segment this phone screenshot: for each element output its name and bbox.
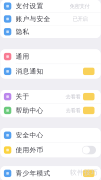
- staticText: 青少年模式: [15, 169, 50, 177]
- button[interactable]: 账户与安全: [0, 13, 100, 25]
- staticText: 使用外币: [15, 146, 43, 154]
- staticText: 关于: [15, 93, 29, 101]
- staticText: 通用: [15, 52, 29, 61]
- staticText: 消息通知: [15, 67, 43, 75]
- staticText: 软件技巧: [70, 168, 98, 176]
- button[interactable]: 使用外币: [0, 143, 100, 157]
- staticText: 去看看: [65, 93, 80, 100]
- staticText: 安全中心: [15, 131, 43, 139]
- button[interactable]: 通用: [0, 49, 100, 64]
- button[interactable]: 消息通知: [0, 64, 100, 78]
- button[interactable]: 支付设置: [0, 0, 100, 12]
- staticText: 隐私: [15, 28, 29, 36]
- staticText: 已开启: [72, 16, 87, 22]
- staticText: 帮助中心: [15, 106, 43, 115]
- button[interactable]: 关于: [0, 90, 100, 103]
- button[interactable]: 青少年模式: [0, 166, 100, 180]
- staticText: 账户与安全: [15, 15, 50, 23]
- staticText: 支付设置: [15, 2, 43, 10]
- button[interactable]: 帮助中心: [0, 104, 100, 117]
- button[interactable]: 隐私: [0, 26, 100, 38]
- button[interactable]: 安全中心: [0, 128, 100, 142]
- staticText: 免密支付: [69, 3, 89, 9]
- staticText: 去看看: [65, 107, 80, 114]
